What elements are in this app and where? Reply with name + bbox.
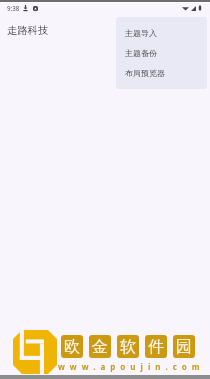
staticText: 金 <box>92 337 108 357</box>
staticText: 园 <box>176 337 192 357</box>
staticText: www.apoujin.com <box>58 361 205 372</box>
staticText: 走路科技 <box>7 24 49 37</box>
staticText: 9:38 <box>7 4 20 12</box>
button[interactable]: 布局预览器 <box>116 63 207 83</box>
staticText: 软 <box>120 337 136 357</box>
staticText: 主题备份 <box>125 48 157 58</box>
staticText: 主题导入 <box>125 28 157 38</box>
button[interactable]: 主题备份 <box>116 43 207 63</box>
staticText: 欧 <box>64 337 80 357</box>
staticText: 件 <box>148 337 164 357</box>
button[interactable]: 主题导入 <box>116 23 207 43</box>
staticText: 布局预览器 <box>125 68 165 78</box>
